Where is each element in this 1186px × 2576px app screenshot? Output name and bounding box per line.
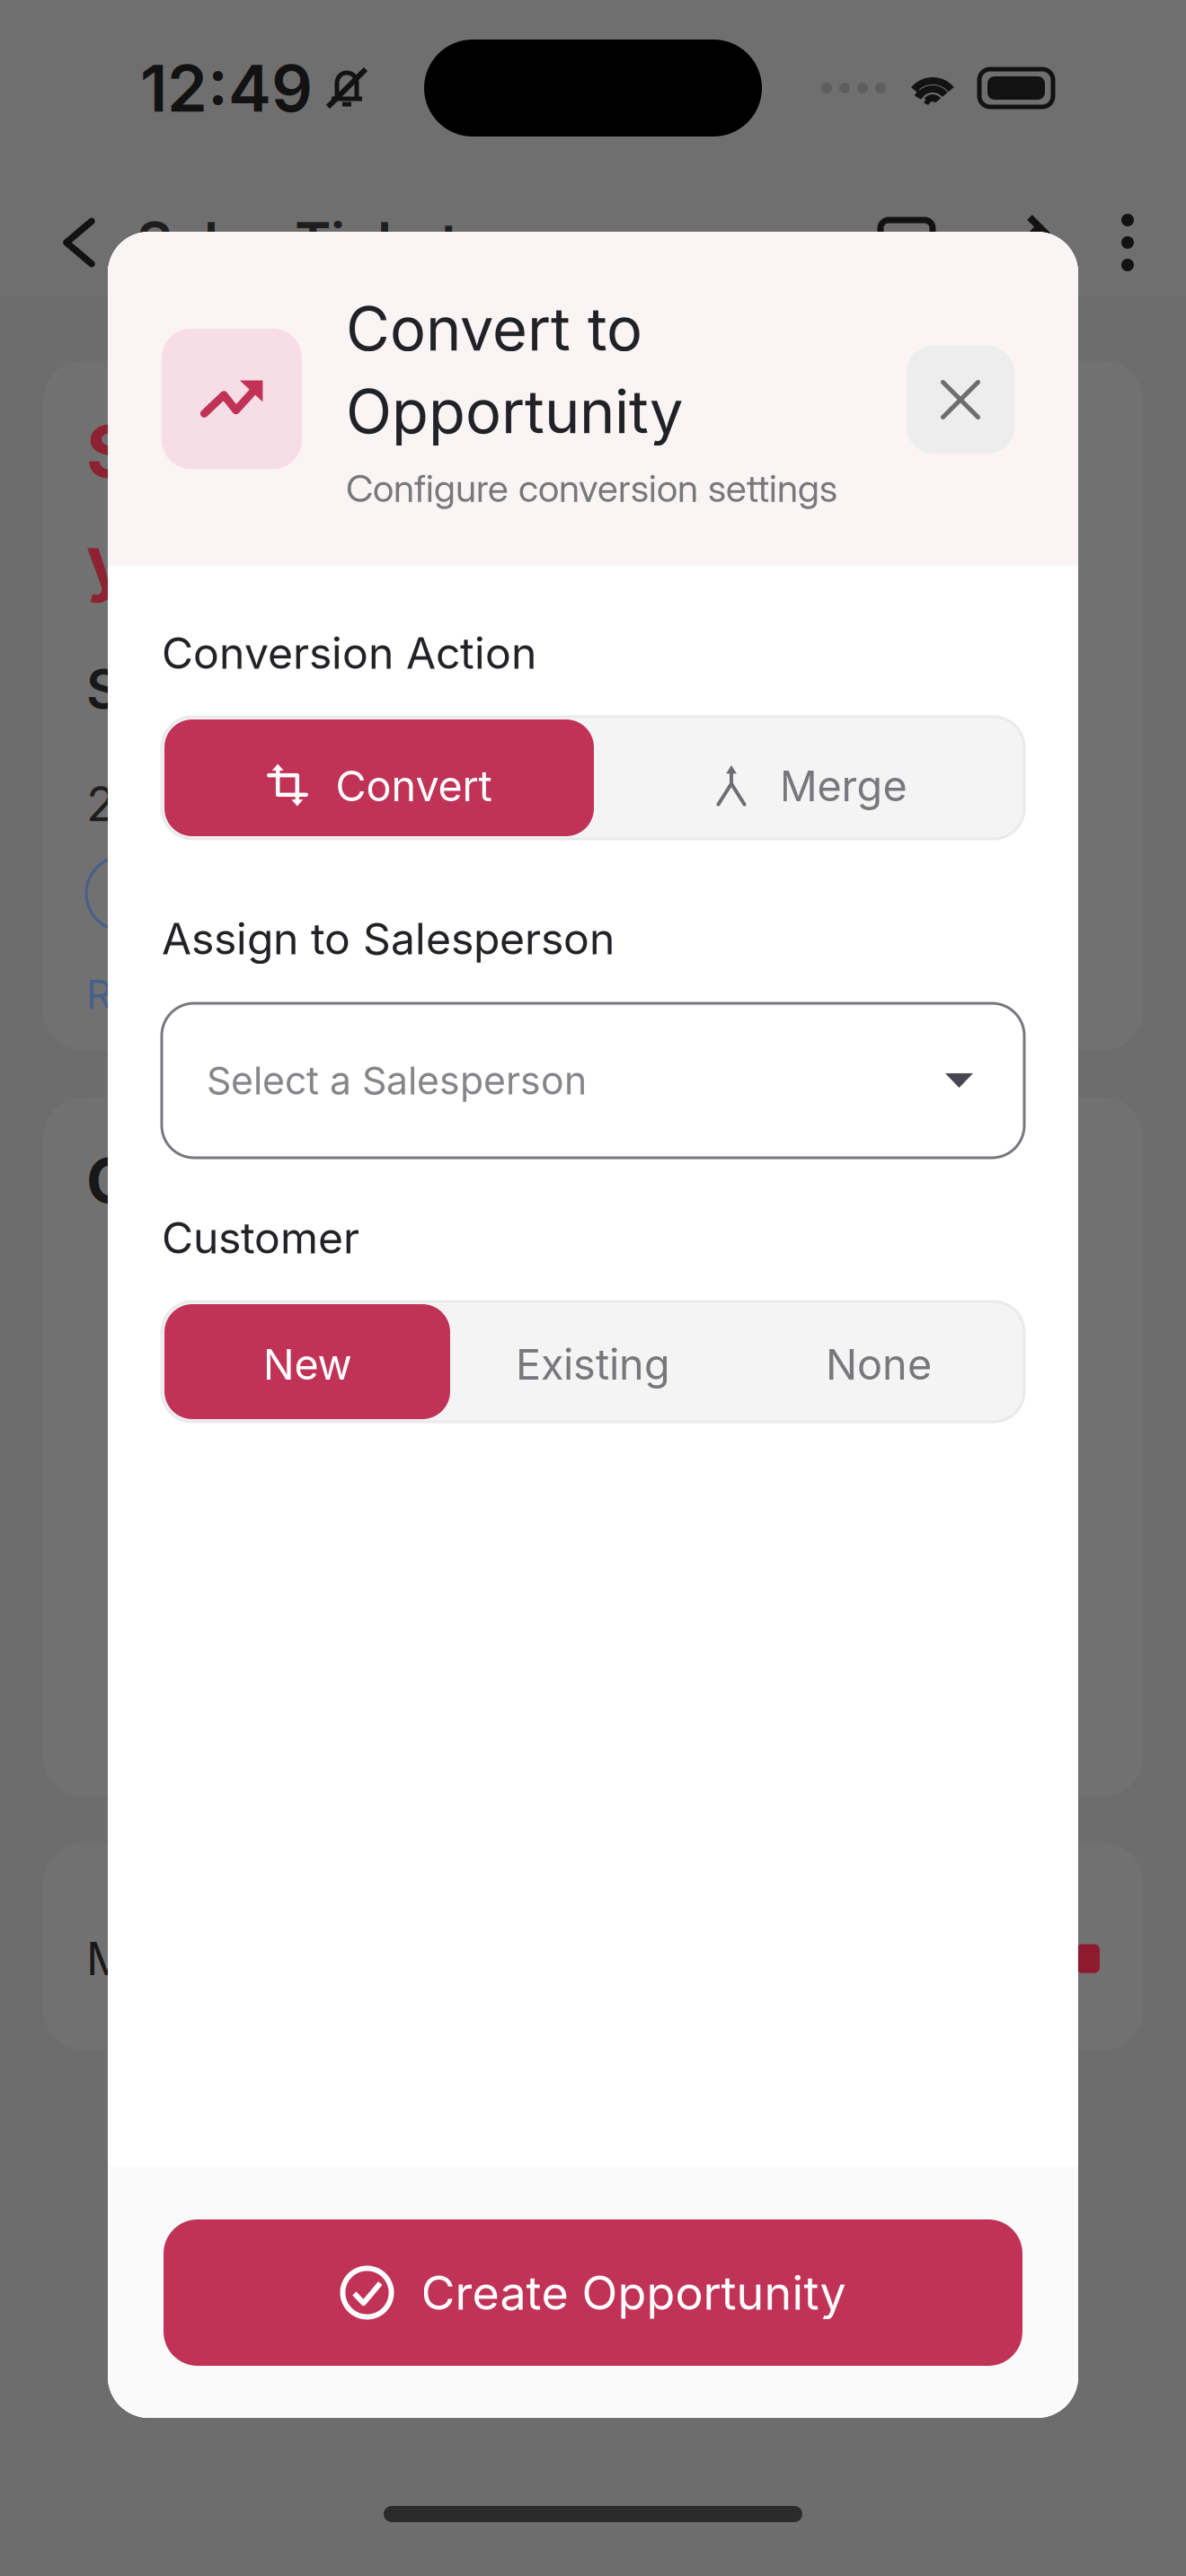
staticText: Select a Salesperson [207,1057,587,1104]
button[interactable]: Convert [164,719,594,836]
button[interactable]: Select a Salesperson [162,1003,1024,1158]
staticText: 12:49 [140,49,313,127]
button[interactable]: New [164,1304,450,1419]
button[interactable]: Create Opportunity [164,2219,1022,2366]
staticText: Opportunity [346,375,683,448]
staticText: New [263,1339,352,1390]
staticText: Customer [162,1212,359,1264]
staticText: None [826,1339,932,1390]
button[interactable]: None [736,1304,1022,1419]
staticText: Sales Ticket for [86,408,632,495]
staticText: Existing [516,1339,670,1390]
staticText: your review [86,518,500,605]
staticText: Conversion Action [162,627,536,679]
staticText: Convert [336,761,492,811]
staticText: Mobile [86,1931,231,1986]
staticText: Create Opportunity [421,2264,846,2321]
staticText: Review and approve the items [86,970,649,1018]
staticText: Assign to Salesperson [162,913,615,965]
staticText: Configure conversion settings [346,465,837,511]
button[interactable]: Merge [594,719,1023,836]
staticText: 2 items [86,775,252,833]
staticText: Merge [779,761,907,811]
staticText: Customer [86,1142,385,1218]
staticText: ST-0001 [86,657,304,721]
button[interactable]: Close [907,346,1014,454]
staticText: Sales Ticket [137,209,460,276]
staticText: Convert to [346,293,642,365]
button[interactable]: Existing [450,1304,736,1419]
